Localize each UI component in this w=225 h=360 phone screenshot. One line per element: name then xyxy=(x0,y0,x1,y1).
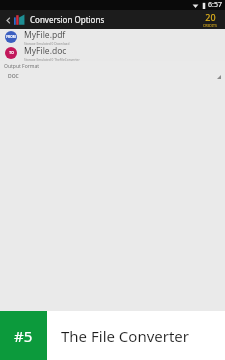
staticText: 6:57 xyxy=(208,0,222,10)
staticText: 20 xyxy=(205,11,216,23)
staticText: DOC xyxy=(8,73,19,80)
staticText: Conversion Options xyxy=(30,14,105,25)
staticText: TO xyxy=(9,51,14,55)
staticText: MyFile.doc xyxy=(24,45,67,57)
staticText: The File Converter xyxy=(61,326,190,346)
staticText: FROM xyxy=(6,35,16,39)
staticText: Storage Emulated 0 TheFileConverter xyxy=(24,58,80,61)
button[interactable]: FROM xyxy=(0,29,225,45)
staticText: Output Format xyxy=(4,63,40,70)
button[interactable]: Navigate up xyxy=(2,14,14,26)
staticText: #5 xyxy=(14,326,33,346)
staticText: Storage Emulated 0 Download xyxy=(24,42,70,45)
button[interactable]: Output Format xyxy=(0,61,225,83)
button[interactable]: 20 xyxy=(195,10,225,29)
button[interactable]: TO xyxy=(0,45,225,61)
staticText: MyFile.pdf xyxy=(24,29,66,41)
staticText: CREDITS xyxy=(203,23,217,28)
